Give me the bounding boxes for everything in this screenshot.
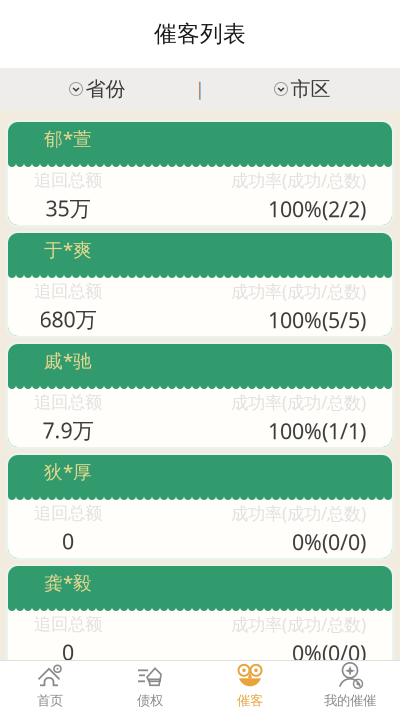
button[interactable]: 债权 <box>100 658 200 711</box>
staticText: 省份 <box>85 77 125 101</box>
staticText: 狄*厚 <box>44 459 92 484</box>
staticText: 0 <box>62 527 74 555</box>
staticText: 催客列表 <box>154 20 246 48</box>
staticText: 680万 <box>39 305 96 333</box>
staticText: 追回总额 <box>34 281 102 302</box>
staticText: 郁*萱 <box>44 126 92 151</box>
staticText: 我的催催 <box>324 692 376 709</box>
button[interactable]: 追回总额 <box>6 342 394 449</box>
button[interactable]: 追回总额 <box>6 564 394 671</box>
staticText: 成功率(成功/总数) <box>231 169 366 192</box>
staticText: 成功率(成功/总数) <box>231 613 366 636</box>
staticText: 首页 <box>37 692 63 709</box>
staticText: 追回总额 <box>34 392 102 413</box>
button[interactable]: 追回总额 <box>6 231 394 338</box>
button[interactable]: 市区 <box>205 68 400 110</box>
staticText: 成功率(成功/总数) <box>231 391 366 414</box>
staticText: 市区 <box>290 77 330 101</box>
staticText: 成功率(成功/总数) <box>231 280 366 303</box>
staticText: 债权 <box>137 692 163 709</box>
staticText: 催客 <box>237 692 263 709</box>
staticText: 100%(2/2) <box>268 195 366 223</box>
staticText: | <box>195 77 205 100</box>
button[interactable]: 追回总额 <box>6 453 394 560</box>
button[interactable]: 首页 <box>0 658 100 711</box>
staticText: 100%(5/5) <box>268 306 366 334</box>
button[interactable]: 追回总额 <box>6 120 394 227</box>
staticText: 追回总额 <box>34 503 102 524</box>
staticText: 戚*驰 <box>44 348 92 373</box>
staticText: 成功率(成功/总数) <box>231 502 366 525</box>
button[interactable]: 催客 <box>200 658 300 711</box>
staticText: 35万 <box>45 194 90 222</box>
staticText: 追回总额 <box>34 170 102 191</box>
button[interactable]: 省份 <box>0 68 195 110</box>
staticText: 追回总额 <box>34 614 102 635</box>
staticText: 龚*毅 <box>44 570 92 595</box>
staticText: 100%(1/1) <box>268 417 366 445</box>
button[interactable]: 我的催催 <box>300 658 400 711</box>
staticText: 0%(0/0) <box>292 528 366 556</box>
staticText: 于*爽 <box>44 237 92 262</box>
staticText: 7.9万 <box>42 416 93 444</box>
staticText: 0%(0/0) <box>292 639 366 667</box>
staticText: 0 <box>62 638 74 666</box>
